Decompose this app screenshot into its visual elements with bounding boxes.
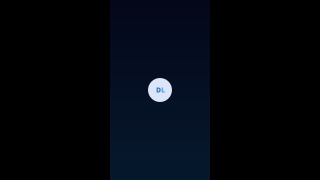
staticText: L <box>161 86 165 94</box>
button[interactable]: DL app logo <box>148 78 172 102</box>
staticText: D <box>156 86 161 94</box>
